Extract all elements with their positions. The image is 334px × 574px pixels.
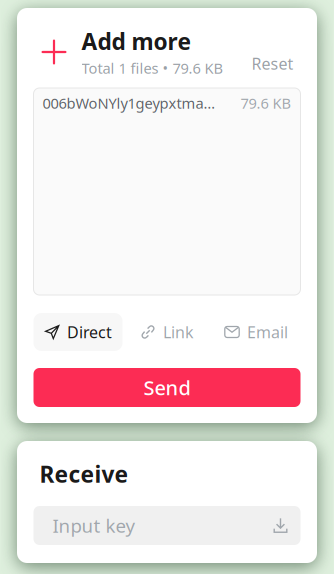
staticText: Total 1 files • 79.6 KB xyxy=(81,58,223,78)
button[interactable]: Add files xyxy=(33,24,74,80)
staticText: Reset xyxy=(251,53,293,74)
button[interactable]: Reset xyxy=(245,52,295,74)
staticText: Send xyxy=(143,374,190,401)
staticText: Add more xyxy=(81,26,191,56)
button[interactable]: Email xyxy=(211,313,300,351)
staticText: Input key xyxy=(52,513,135,538)
button[interactable]: Direct xyxy=(33,313,122,351)
staticText: Direct xyxy=(67,321,112,343)
staticText: Link xyxy=(163,321,194,343)
button[interactable]: Send xyxy=(33,368,300,407)
staticText: Email xyxy=(247,321,288,343)
staticText: Receive xyxy=(39,459,128,489)
button[interactable]: Receive file xyxy=(269,510,291,540)
staticText: 006bWoNYly1geypxtma9nj… xyxy=(42,93,220,113)
button[interactable]: Link xyxy=(122,313,211,351)
staticText: 79.6 KB xyxy=(240,93,291,113)
